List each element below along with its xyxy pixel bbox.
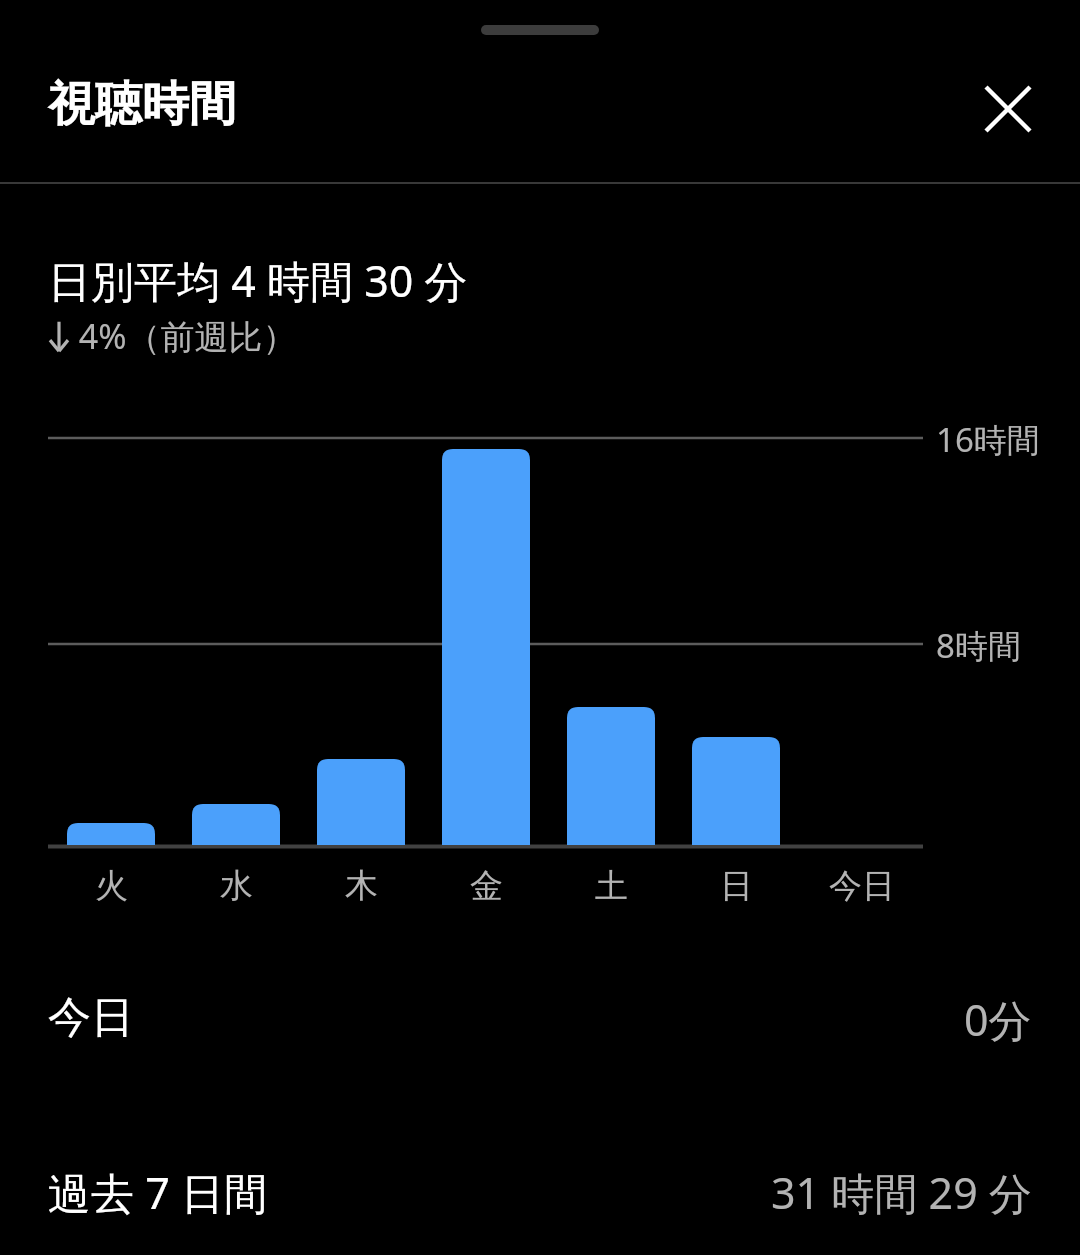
staticText: 今日 — [829, 865, 895, 907]
staticText: 視聴時間 — [48, 75, 236, 134]
staticText: 日 — [720, 865, 753, 907]
staticText: 水 — [220, 865, 253, 907]
staticText: 8時間 — [936, 623, 1021, 668]
staticText: 木 — [345, 865, 378, 907]
staticText: 4%（前週比） — [70, 313, 297, 359]
button[interactable]: 過去 7 日間 — [0, 1163, 1080, 1219]
staticText: 火 — [95, 865, 128, 907]
button[interactable]: 今日 — [0, 990, 1080, 1046]
staticText: 31 時間 29 分 — [771, 1163, 1032, 1219]
staticText: 過去 7 日間 — [48, 1163, 267, 1219]
button[interactable]: 閉じる — [963, 64, 1053, 154]
staticText: 16時間 — [936, 417, 1040, 462]
staticText: 土 — [595, 865, 628, 907]
staticText: 0分 — [964, 990, 1032, 1046]
staticText: 日別平均 4 時間 30 分 — [48, 251, 468, 310]
staticText: 今日 — [48, 991, 134, 1045]
staticText: 金 — [470, 865, 503, 907]
